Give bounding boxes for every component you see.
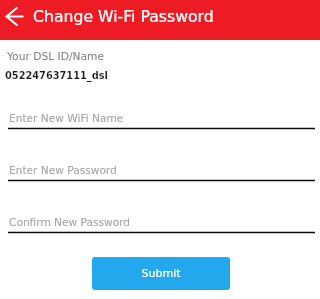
- button[interactable]: Back: [0, 2, 28, 30]
- button[interactable]: Enter New Password: [8, 159, 315, 185]
- staticText: Change Wi-Fi Password: [33, 7, 214, 25]
- staticText: Confirm New Password: [9, 216, 131, 228]
- button[interactable]: Submit: [92, 257, 230, 290]
- button[interactable]: Confirm New Password: [8, 211, 315, 237]
- staticText: Enter New WiFi Name: [9, 112, 124, 124]
- staticText: Your DSL ID/Name: [7, 50, 105, 62]
- staticText: 052247637111_dsl: [5, 70, 108, 81]
- staticText: Submit: [141, 267, 181, 280]
- staticText: Enter New Password: [9, 164, 117, 176]
- button[interactable]: Enter New WiFi Name: [8, 107, 315, 133]
